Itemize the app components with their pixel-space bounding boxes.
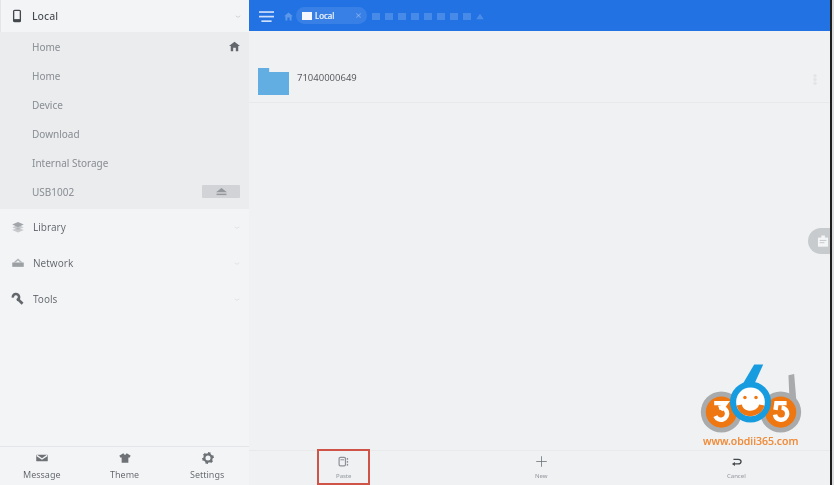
staticText: New <box>535 472 548 480</box>
staticText: Tools <box>33 292 58 306</box>
staticText: Theme <box>110 468 140 480</box>
staticText: Network <box>33 256 74 270</box>
button[interactable]: Menu <box>256 5 277 27</box>
staticText: Local <box>315 10 335 21</box>
button[interactable]: Library <box>0 209 249 245</box>
staticText: 71040000649 <box>297 71 357 84</box>
button[interactable]: Download <box>0 119 249 148</box>
button[interactable]: Tab <box>408 10 421 22</box>
button[interactable]: Device <box>0 90 249 119</box>
button[interactable]: 71040000649 <box>249 67 834 95</box>
staticText: Settings <box>190 468 225 480</box>
staticText: Library <box>33 220 66 234</box>
button[interactable]: Eject <box>202 185 240 198</box>
staticText: Home <box>32 69 61 83</box>
staticText: Local <box>32 9 59 23</box>
button[interactable]: Settings <box>166 447 249 485</box>
button[interactable]: Tab <box>434 10 447 22</box>
button[interactable]: Local <box>0 0 249 32</box>
staticText: Message <box>23 468 61 480</box>
staticText: USB1002 <box>32 185 75 199</box>
button[interactable]: Network <box>0 245 249 281</box>
button[interactable]: Message <box>0 447 83 485</box>
staticText: Device <box>32 98 63 112</box>
button[interactable]: Tab <box>447 10 460 22</box>
button[interactable]: Local <box>296 7 367 24</box>
button[interactable]: Tab <box>382 10 395 22</box>
button[interactable]: Tab <box>460 10 473 22</box>
button[interactable]: Cloud <box>473 10 486 22</box>
button[interactable]: Cancel <box>711 451 762 485</box>
staticText: Home <box>32 40 61 54</box>
button[interactable]: Theme <box>83 447 166 485</box>
button[interactable]: Home <box>0 32 249 61</box>
button[interactable]: Paste <box>318 451 369 485</box>
button[interactable]: Home <box>281 8 295 24</box>
button[interactable]: Tab <box>395 10 408 22</box>
button[interactable]: Internal Storage <box>0 148 249 177</box>
button[interactable]: New <box>516 451 567 485</box>
staticText: www.obdii365.com <box>703 434 799 448</box>
button[interactable]: Clipboard <box>808 228 834 254</box>
button[interactable]: USB1002 <box>0 177 249 206</box>
staticText: Download <box>32 127 80 141</box>
staticText: Cancel <box>727 472 746 480</box>
staticText: Internal Storage <box>32 156 109 170</box>
button[interactable]: Tab <box>369 10 382 22</box>
button[interactable]: Tools <box>0 281 249 317</box>
button[interactable]: Home <box>0 61 249 90</box>
staticText: Paste <box>336 472 352 480</box>
button[interactable]: Tab <box>421 10 434 22</box>
